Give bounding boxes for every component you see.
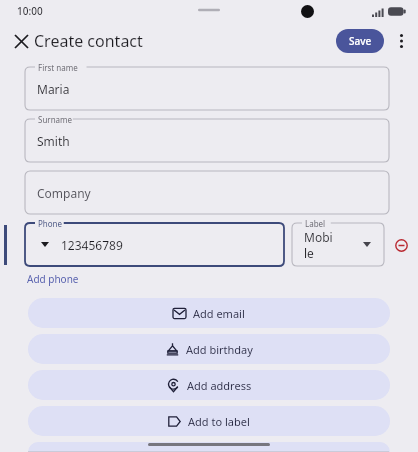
button[interactable]: Label [292, 223, 384, 266]
button[interactable]: Close [6, 26, 36, 56]
staticText: Mobile [304, 229, 333, 261]
staticText: Add email [193, 306, 245, 321]
staticText: Label [305, 218, 326, 229]
staticText: Company [37, 185, 91, 201]
button[interactable]: Add more [28, 442, 390, 452]
staticText: Save [349, 34, 372, 48]
staticText: Surname [38, 114, 73, 125]
button[interactable]: More options [387, 27, 415, 55]
button[interactable]: Phone [25, 223, 284, 266]
button[interactable]: Add phone [25, 270, 81, 288]
button[interactable]: Add birthday [28, 334, 390, 364]
staticText: Create contact [34, 30, 143, 52]
button[interactable]: Remove phone [389, 233, 413, 257]
button[interactable]: Add email [28, 298, 390, 328]
button[interactable]: Add to label [28, 406, 390, 436]
staticText: Maria [37, 81, 70, 97]
staticText: Add to label [188, 414, 250, 429]
staticText: Add birthday [186, 342, 253, 357]
staticText: Phone [38, 218, 63, 229]
staticText: Add phone [27, 272, 79, 286]
button[interactable]: Add address [28, 370, 390, 400]
staticText: 123456789 [61, 237, 123, 253]
button[interactable]: Surname [25, 119, 389, 162]
button[interactable]: Save [336, 29, 384, 53]
staticText: Smith [37, 133, 70, 149]
staticText: First name [38, 62, 78, 73]
button[interactable]: First name [25, 67, 389, 110]
staticText: 10:00 [17, 4, 43, 18]
staticText: Add address [187, 378, 252, 393]
button[interactable]: Company [25, 171, 389, 214]
